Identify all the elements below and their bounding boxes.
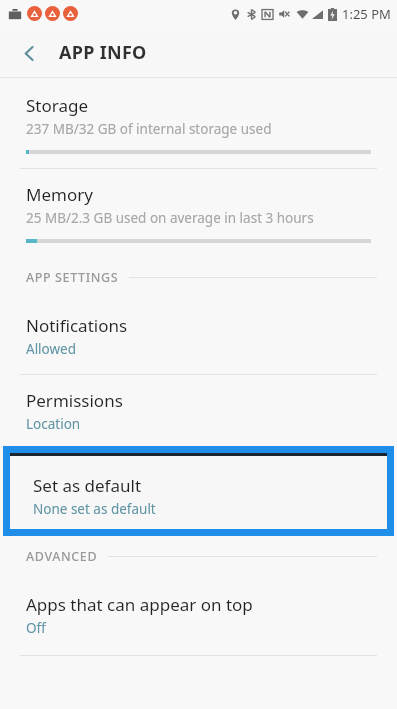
- staticText: Apps that can appear on top: [26, 593, 253, 616]
- staticText: Storage: [26, 94, 89, 117]
- staticText: APP SETTINGS: [26, 269, 119, 286]
- staticText: 237 MB/32 GB of internal storage used: [26, 120, 272, 138]
- staticText: 1:25 PM: [342, 5, 391, 23]
- staticText: Set as default: [33, 474, 142, 497]
- staticText: None set as default: [33, 500, 156, 518]
- button[interactable]: Back: [12, 36, 46, 70]
- button[interactable]: Memory: [0, 181, 397, 229]
- staticText: Off: [26, 619, 46, 637]
- staticText: ADVANCED: [26, 548, 98, 565]
- button[interactable]: Set as default: [3, 446, 394, 536]
- button[interactable]: Storage: [0, 92, 397, 140]
- button[interactable]: Notifications: [0, 312, 397, 360]
- staticText: 25 MB/2.3 GB used on average in last 3 h…: [26, 209, 314, 227]
- staticText: Location: [26, 415, 81, 433]
- staticText: Memory: [26, 183, 93, 206]
- staticText: APP INFO: [59, 40, 147, 65]
- staticText: Permissions: [26, 389, 123, 412]
- staticText: Notifications: [26, 314, 128, 337]
- staticText: Allowed: [26, 340, 77, 358]
- button[interactable]: Permissions: [0, 387, 397, 435]
- button[interactable]: Apps that can appear on top: [0, 591, 397, 639]
